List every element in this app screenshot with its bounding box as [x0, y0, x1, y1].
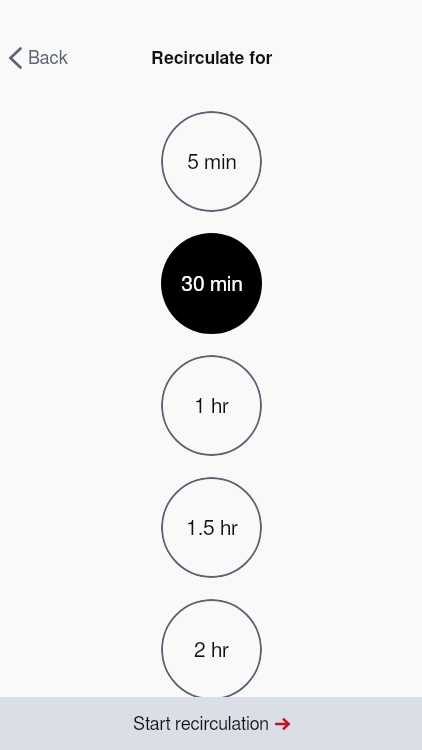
button[interactable]: Start recirculation — [0, 697, 422, 750]
button[interactable]: 30 min — [161, 233, 262, 334]
staticText: Start recirculation — [133, 716, 269, 734]
button[interactable]: Back — [2, 44, 78, 74]
staticText: Back — [28, 50, 68, 68]
staticText: 30 min — [181, 274, 243, 295]
staticText: 1 hr — [194, 396, 229, 417]
button[interactable]: 1 hr — [161, 355, 262, 456]
button[interactable]: 5 min — [161, 111, 262, 212]
staticText: 5 min — [187, 152, 237, 173]
staticText: Recirculate for — [151, 50, 273, 68]
staticText: 1.5 hr — [186, 518, 238, 539]
button[interactable]: 1.5 hr — [161, 477, 262, 578]
button[interactable]: 2 hr — [161, 599, 262, 700]
staticText: 2 hr — [194, 640, 229, 661]
